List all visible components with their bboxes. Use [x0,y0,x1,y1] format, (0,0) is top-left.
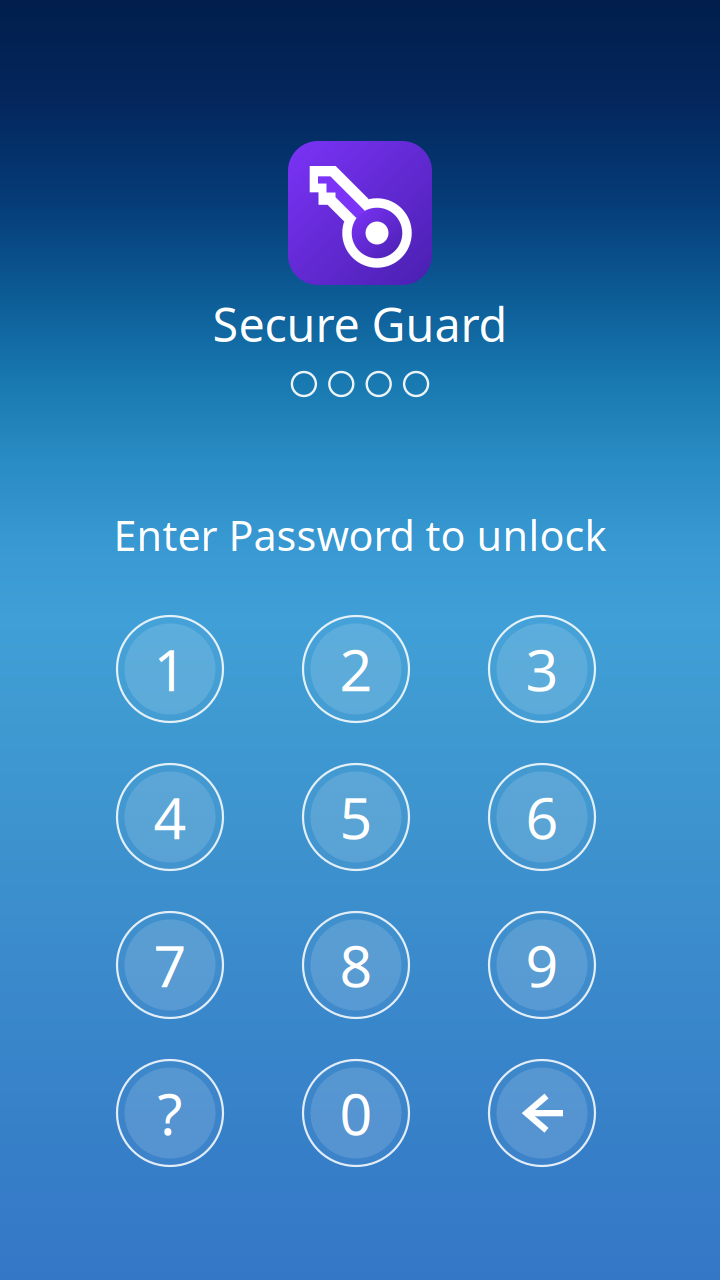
button[interactable]: 5 [263,743,449,891]
staticText: 1 [153,631,186,707]
staticText: 5 [339,779,372,855]
staticText: Secure Guard [212,293,507,355]
button[interactable]: Forgot password [77,1039,263,1187]
staticText: 2 [339,631,372,707]
button[interactable]: 8 [263,891,449,1039]
button[interactable]: 2 [263,595,449,743]
staticText: 0 [339,1075,372,1151]
staticText: Enter Password to unlock [113,508,606,562]
staticText: 7 [153,927,186,1003]
staticText: 4 [153,779,186,855]
button[interactable]: 6 [449,743,635,891]
button[interactable]: 4 [77,743,263,891]
staticText: 8 [339,927,372,1003]
button[interactable]: 1 [77,595,263,743]
staticText: 3 [525,631,558,707]
staticText: 6 [525,779,558,855]
button[interactable]: 9 [449,891,635,1039]
staticText: 9 [525,927,558,1003]
staticText: ? [157,1075,182,1151]
button[interactable]: Delete [449,1039,635,1187]
button[interactable]: 7 [77,891,263,1039]
button[interactable]: 0 [263,1039,449,1187]
button[interactable]: 3 [449,595,635,743]
